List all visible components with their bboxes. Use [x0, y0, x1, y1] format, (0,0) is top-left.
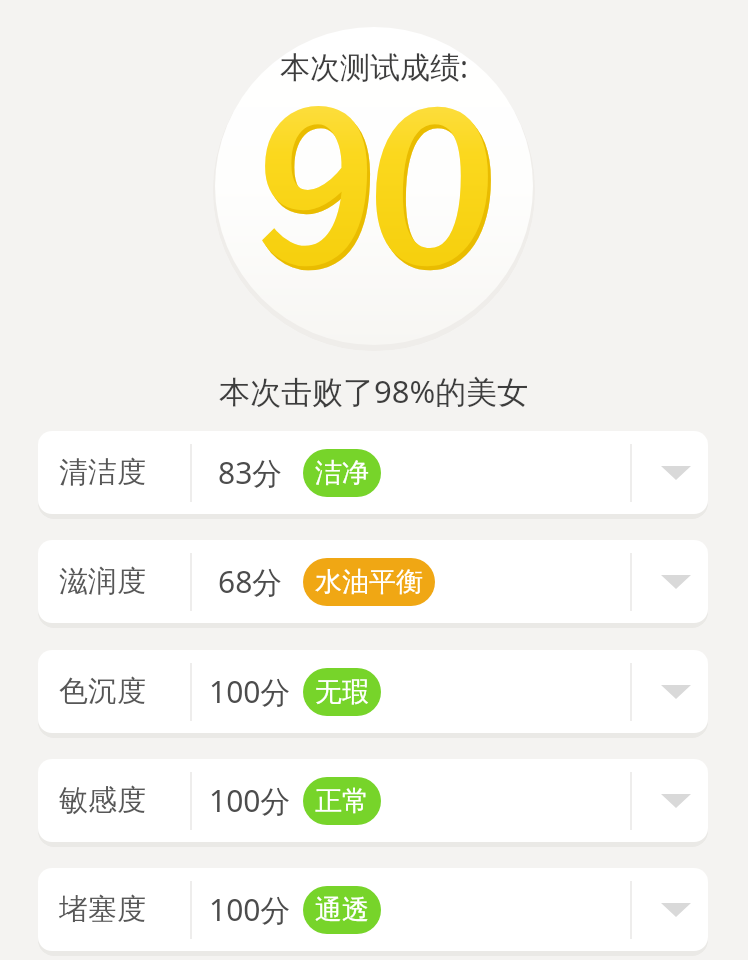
- staticText: 通透: [315, 893, 369, 927]
- staticText: 敏感度: [59, 782, 146, 819]
- staticText: 100分: [209, 671, 291, 712]
- staticText: 90: [260, 16, 493, 329]
- button[interactable]: 洁净: [315, 449, 369, 497]
- staticText: 正常: [315, 784, 369, 818]
- button[interactable]: 敏感度: [38, 759, 708, 842]
- button[interactable]: 色沉度: [38, 650, 708, 733]
- staticText: 100分: [209, 889, 291, 930]
- staticText: 68分: [218, 561, 283, 602]
- button[interactable]: 滋润度: [38, 540, 708, 623]
- staticText: 本次测试成绩:: [280, 46, 469, 87]
- button[interactable]: 正常: [315, 777, 369, 825]
- button[interactable]: 清洁度: [38, 431, 708, 514]
- staticText: 洁净: [315, 456, 369, 490]
- button[interactable]: 通透: [315, 886, 369, 934]
- staticText: 水油平衡: [315, 565, 423, 599]
- staticText: 色沉度: [59, 673, 146, 710]
- button[interactable]: 无瑕: [315, 668, 369, 716]
- staticText: 本次击败了98%的美女: [219, 370, 529, 412]
- staticText: 滋润度: [59, 563, 146, 600]
- staticText: 83分: [218, 452, 283, 493]
- staticText: 90: [257, 12, 490, 325]
- button[interactable]: 水油平衡: [315, 558, 423, 606]
- button[interactable]: 堵塞度: [38, 868, 708, 951]
- staticText: 100分: [209, 780, 291, 821]
- staticText: 堵塞度: [59, 891, 146, 928]
- staticText: 清洁度: [59, 454, 146, 491]
- staticText: 无瑕: [315, 675, 369, 709]
